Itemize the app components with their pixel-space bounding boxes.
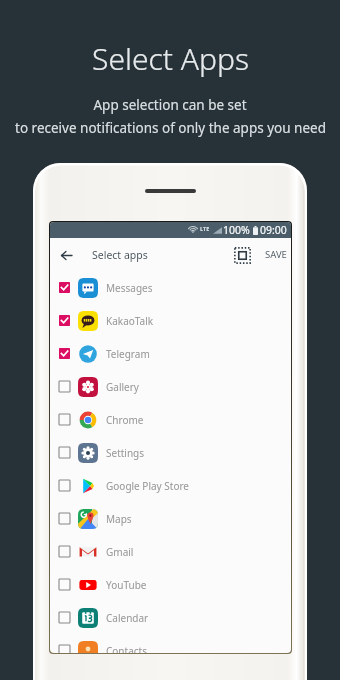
staticText: YouTube (106, 578, 147, 592)
button[interactable]: Settings (50, 436, 291, 469)
staticText: Chrome (106, 413, 144, 427)
staticText: App selection can be set (93, 96, 247, 114)
staticText: Google Play Store (106, 479, 190, 493)
staticText: Maps (106, 512, 132, 526)
staticText: Select Apps (92, 38, 249, 79)
button[interactable]: Gallery (50, 370, 291, 403)
button[interactable]: KakaoTalk (50, 304, 291, 337)
staticText: Telegram (106, 347, 150, 361)
staticText: KakaoTalk (106, 314, 154, 328)
button[interactable]: Messages (50, 271, 291, 304)
button[interactable]: Gmail (50, 535, 291, 568)
staticText: Contacts (106, 644, 147, 653)
button[interactable]: SAVE (264, 244, 288, 265)
staticText: Messages (106, 281, 153, 295)
button[interactable]: Telegram (50, 337, 291, 370)
staticText: Gallery (106, 380, 139, 394)
button[interactable]: Calendar (50, 601, 291, 634)
staticText: SAVE (265, 248, 287, 261)
button[interactable]: Contacts (50, 634, 291, 653)
staticText: to receive notifications of only the app… (15, 119, 326, 137)
staticText: Settings (106, 446, 145, 460)
staticText: LTE (200, 225, 210, 232)
staticText: Select apps (92, 248, 148, 262)
button[interactable]: YouTube (50, 568, 291, 601)
button[interactable]: Select all (231, 244, 253, 266)
staticText: Gmail (106, 545, 134, 559)
button[interactable]: Google Play Store (50, 469, 291, 502)
staticText: Calendar (106, 611, 149, 625)
button[interactable]: Chrome (50, 403, 291, 436)
staticText: 09:00 (260, 223, 287, 237)
button[interactable]: Maps (50, 502, 291, 535)
staticText: 100% (223, 223, 250, 237)
button[interactable]: Back (55, 244, 77, 266)
